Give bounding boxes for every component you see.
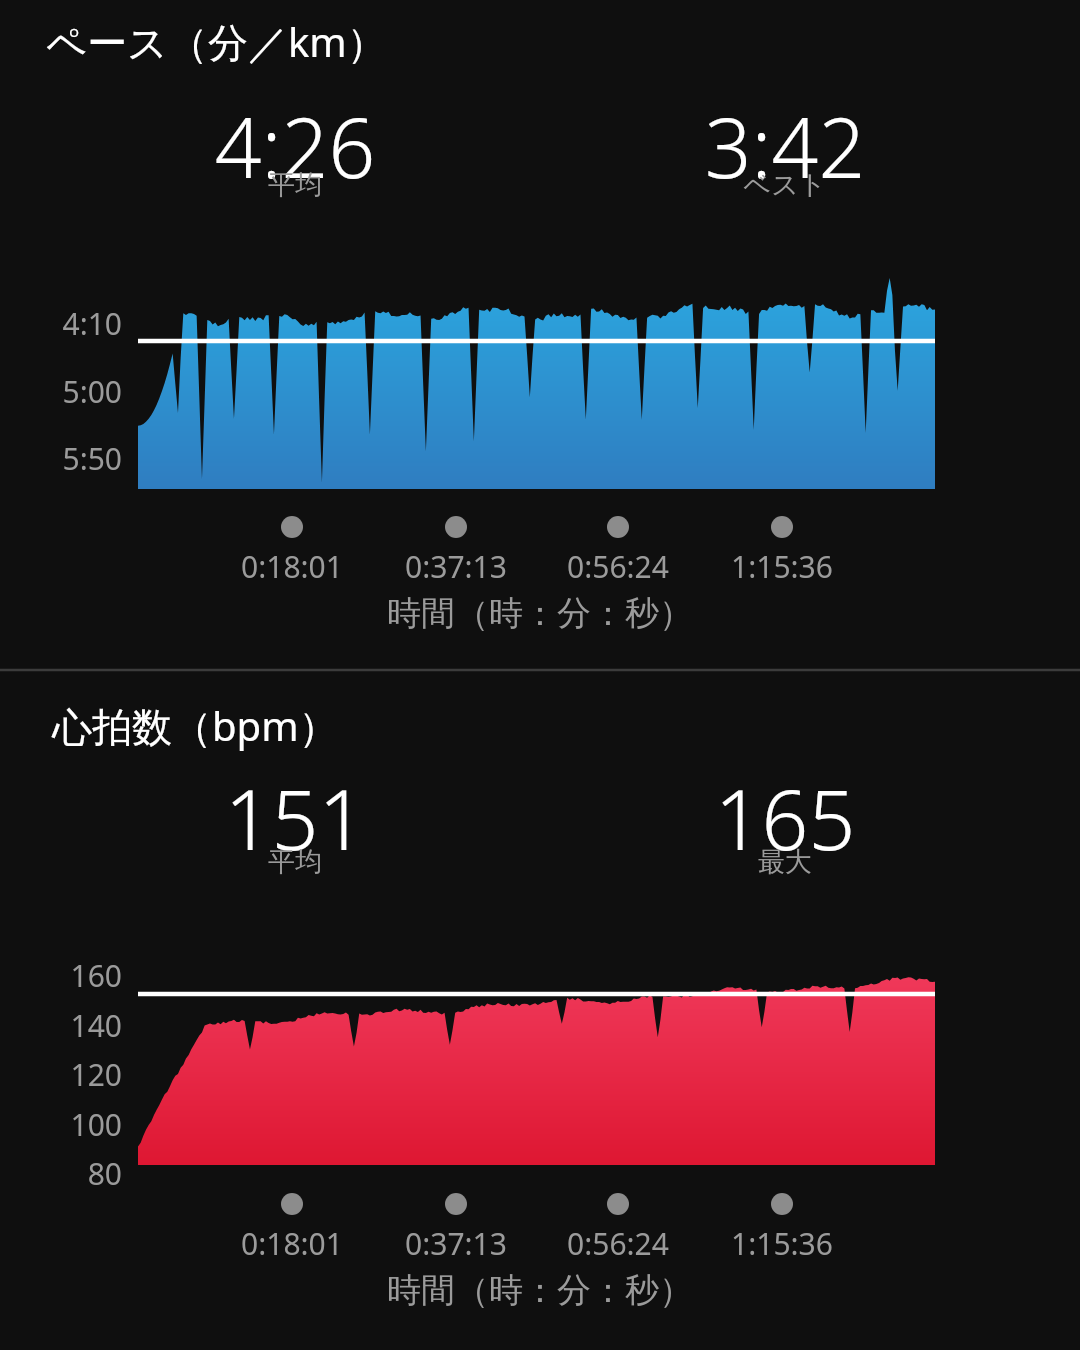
- staticText: 最大: [590, 845, 980, 879]
- staticText: 5:00: [30, 371, 122, 412]
- staticText: 5:50: [30, 438, 122, 479]
- staticText: ベスト: [590, 168, 980, 202]
- staticText: 心拍数（bpm）: [52, 698, 752, 753]
- staticText: 80: [30, 1153, 122, 1194]
- staticText: ペース（分／km）: [46, 14, 746, 69]
- staticText: 1:15:36: [712, 546, 852, 587]
- staticText: 100: [30, 1104, 122, 1145]
- staticText: 0:37:13: [386, 1223, 526, 1264]
- staticText: 140: [30, 1005, 122, 1046]
- staticText: 151: [100, 762, 490, 874]
- staticText: 0:37:13: [386, 546, 526, 587]
- staticText: 0:18:01: [222, 546, 362, 587]
- staticText: 0:18:01: [222, 1223, 362, 1264]
- staticText: 時間（時：分：秒）: [190, 592, 890, 635]
- staticText: 160: [30, 955, 122, 996]
- staticText: 4:26: [100, 90, 490, 202]
- staticText: 165: [590, 762, 980, 874]
- staticText: 3:42: [590, 90, 980, 202]
- staticText: 1:15:36: [712, 1223, 852, 1264]
- staticText: 平均: [100, 168, 490, 202]
- staticText: 4:10: [30, 303, 122, 344]
- staticText: 0:56:24: [548, 1223, 688, 1264]
- staticText: 120: [30, 1054, 122, 1095]
- button[interactable]: ペース（分／km）: [0, 0, 1080, 1350]
- staticText: 平均: [100, 845, 490, 879]
- staticText: 時間（時：分：秒）: [190, 1269, 890, 1312]
- staticText: 0:56:24: [548, 546, 688, 587]
